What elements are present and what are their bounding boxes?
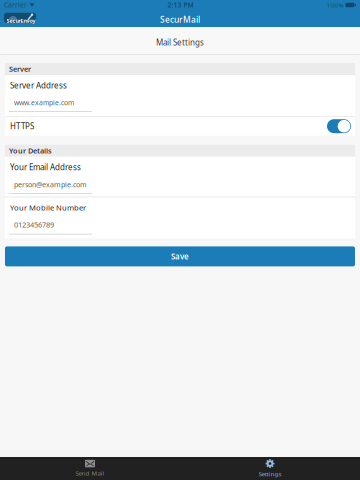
staticText: HTTPS [10,121,34,132]
staticText: person@example.com [14,180,87,189]
button[interactable]: Settings [180,457,360,480]
staticText: Mail Settings [156,37,204,48]
staticText: Carrier [4,0,27,10]
button[interactable]: Save [5,246,355,266]
staticText: Server [9,64,31,74]
staticText: Send Mail [75,469,104,477]
staticText: 100% [326,1,343,9]
staticText: SecurMail [160,14,200,25]
staticText: Save [171,251,189,262]
button[interactable]: HTTPS [327,119,351,133]
staticText: Your Mobile Number [10,202,86,213]
staticText: Settings [258,470,281,478]
staticText: 0123456789 [14,220,54,230]
button[interactable]: Send Mail [0,457,180,480]
staticText: SecurEnvoy [6,17,35,24]
staticText: Server Address [10,80,67,91]
staticText: www.example.com [14,98,74,107]
staticText: Your Details [9,146,52,156]
staticText: 2:13 PM [167,0,193,10]
staticText: Your Email Address [10,162,81,173]
